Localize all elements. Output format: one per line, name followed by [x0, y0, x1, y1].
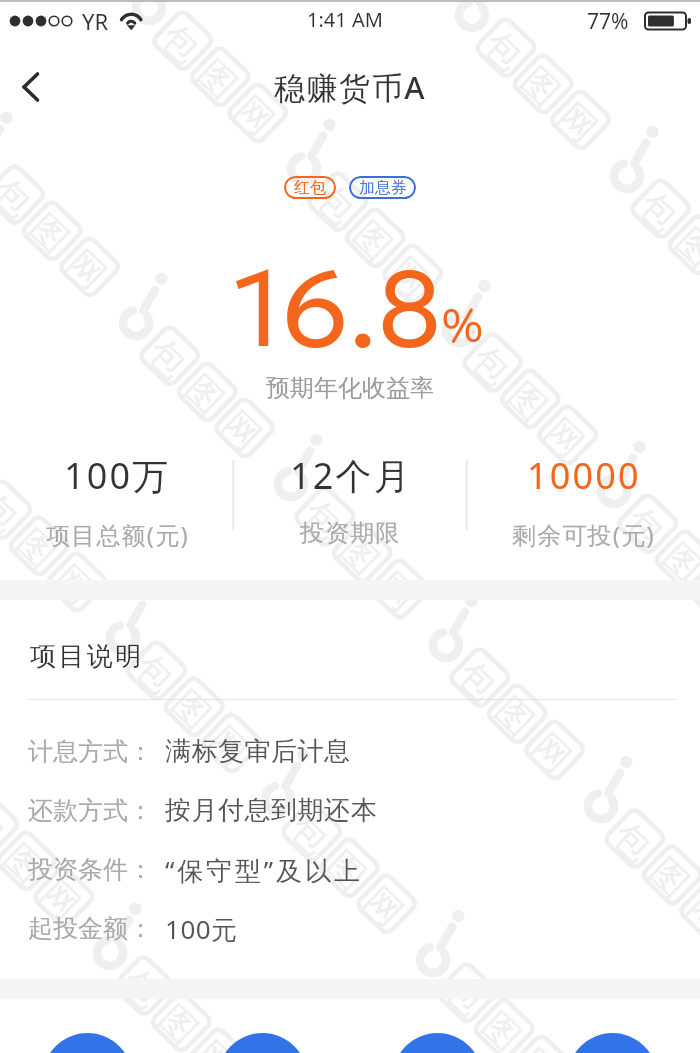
staticText: 还款方式：: [28, 795, 165, 826]
staticText: 77%: [587, 7, 629, 36]
staticText: 预期年化收益率: [266, 373, 434, 403]
staticText: 包图网: [436, 966, 579, 1053]
staticText: 包图网: [449, 651, 592, 792]
staticText: 包图网: [462, 336, 605, 477]
staticText: 稳赚货币A: [274, 66, 427, 108]
staticText: 投资期限: [300, 518, 401, 548]
staticText: “保守型”及以上: [165, 852, 363, 888]
staticText: YR: [82, 6, 109, 36]
staticText: 包图网: [294, 490, 437, 631]
staticText: 包图网: [643, 0, 700, 8]
staticText: 12个月: [290, 451, 412, 500]
button[interactable]: 红包: [284, 176, 336, 199]
staticText: 起投金额：: [28, 913, 165, 944]
staticText: 10000: [527, 451, 641, 500]
staticText: 100元: [165, 911, 238, 947]
staticText: 计息方式：: [28, 736, 165, 767]
button[interactable]: Tab 3: [350, 999, 525, 1053]
staticText: 1:41 AM: [307, 6, 383, 33]
staticText: 包图网: [126, 644, 269, 785]
staticText: 包图网: [0, 483, 114, 624]
staticText: 按月付息到期还本: [165, 794, 378, 827]
staticText: 包图网: [139, 329, 282, 470]
button[interactable]: 加息券: [349, 176, 416, 199]
staticText: 满标复审后计息: [165, 735, 351, 768]
staticText: 包图网: [475, 21, 618, 162]
button[interactable]: Back: [0, 57, 60, 117]
staticText: 包图网: [307, 175, 450, 316]
staticText: 包图网: [152, 14, 295, 155]
staticText: 包图网: [617, 497, 700, 638]
staticText: 项目总额(元): [46, 518, 189, 551]
staticText: 加息券: [359, 178, 407, 198]
staticText: 项目说明: [30, 640, 144, 673]
button[interactable]: Tab 2: [175, 999, 350, 1053]
staticText: 包图网: [604, 812, 700, 953]
staticText: 投资条件：: [28, 854, 165, 885]
staticText: 红包: [294, 178, 326, 198]
staticText: %: [441, 295, 484, 358]
staticText: 包图网: [0, 168, 127, 309]
staticText: 剩余可投(元): [512, 518, 655, 551]
staticText: 包图网: [281, 805, 424, 946]
button[interactable]: Tab 4: [525, 999, 700, 1053]
button[interactable]: Tab 1: [0, 999, 175, 1053]
staticText: 100万: [64, 451, 171, 500]
staticText: 包图网: [113, 959, 256, 1053]
staticText: 16.8: [235, 242, 443, 376]
staticText: 包图网: [630, 182, 700, 323]
staticText: 包图网: [0, 798, 101, 939]
